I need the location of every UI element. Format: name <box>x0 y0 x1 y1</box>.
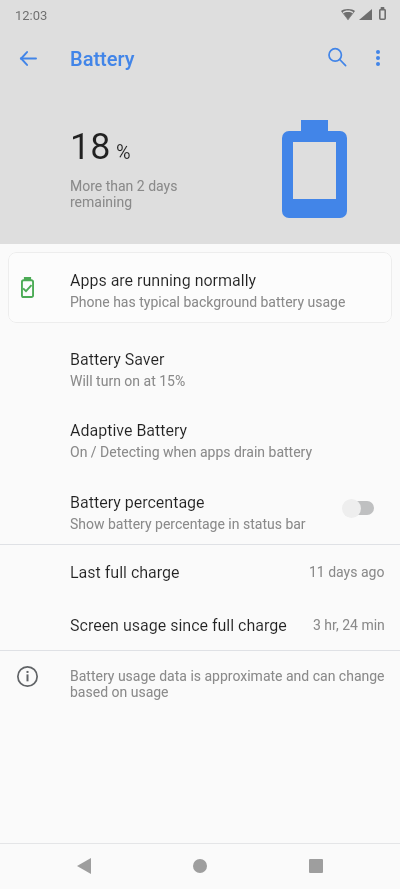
staticText: Show battery percentage in status bar <box>70 516 306 532</box>
staticText: Last full charge <box>70 563 180 582</box>
button[interactable]: More options <box>356 36 400 80</box>
staticText: Battery Saver <box>70 350 165 369</box>
button[interactable]: Search <box>315 35 359 79</box>
button[interactable]: Recent apps <box>285 843 346 889</box>
button[interactable]: Screen usage since full charge <box>0 609 400 661</box>
staticText: 3 hr, 24 min <box>313 617 385 633</box>
button[interactable]: Adaptive Battery <box>0 415 400 472</box>
button[interactable]: Apps are running normally <box>8 252 392 323</box>
button[interactable]: Battery Saver <box>0 344 400 401</box>
staticText: 18 <box>70 126 111 168</box>
staticText: Battery percentage <box>70 493 205 512</box>
staticText: More than 2 days remaining <box>70 178 178 210</box>
button[interactable]: Battery percentage <box>0 487 400 544</box>
other: Information <box>17 666 38 687</box>
staticText: Adaptive Battery <box>70 421 188 440</box>
staticText: % <box>116 140 131 163</box>
staticText: 12:03 <box>15 8 48 23</box>
button[interactable]: Home <box>170 843 230 889</box>
button[interactable]: Last full charge <box>0 556 400 608</box>
staticText: Battery <box>70 47 135 70</box>
staticText: On / Detecting when apps drain battery <box>70 444 313 460</box>
button[interactable]: Navigate up <box>6 36 50 80</box>
staticText: Phone has typical background battery usa… <box>70 294 346 310</box>
staticText: Will turn on at 15% <box>70 373 186 389</box>
staticText: Battery usage data is approximate and ca… <box>70 668 385 700</box>
staticText: Screen usage since full charge <box>70 616 287 635</box>
staticText: 11 days ago <box>309 564 385 580</box>
button[interactable]: Back <box>53 843 114 889</box>
staticText: Apps are running normally <box>70 271 257 290</box>
